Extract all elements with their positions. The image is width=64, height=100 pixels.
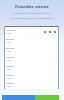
staticText: Your daily 10 min kit of fun at home — [0, 12, 64, 15]
staticText: Exercise — [6, 38, 14, 41]
staticText: 1 min — [6, 59, 11, 62]
button[interactable]: Exercise — [4, 72, 59, 81]
staticText: 1 min — [6, 50, 11, 53]
button[interactable]: Exercise — [4, 54, 59, 63]
staticText: 1 min — [6, 77, 11, 80]
staticText: Pocketbits: exercise — [0, 4, 64, 9]
staticText: Exercise — [6, 74, 14, 77]
staticText: Warm up — [6, 29, 16, 32]
staticText: 1 min — [6, 68, 11, 71]
button[interactable]: Exercise — [4, 81, 59, 89]
staticText: Exercise — [6, 82, 14, 85]
button[interactable]: Exercise — [4, 45, 59, 54]
button[interactable]: Exercise — [4, 63, 59, 72]
staticText: Exercise — [6, 65, 14, 68]
staticText: 1 min — [6, 85, 11, 88]
staticText: Pick your workout and get moving today — [0, 17, 64, 20]
staticText: Exercise — [6, 47, 14, 50]
staticText: 1 min — [6, 41, 11, 44]
button[interactable]: Warm up — [4, 28, 59, 36]
staticText: Exercise — [6, 56, 14, 59]
staticText: 2 min — [6, 32, 12, 35]
button[interactable]: Exercise — [4, 36, 59, 45]
